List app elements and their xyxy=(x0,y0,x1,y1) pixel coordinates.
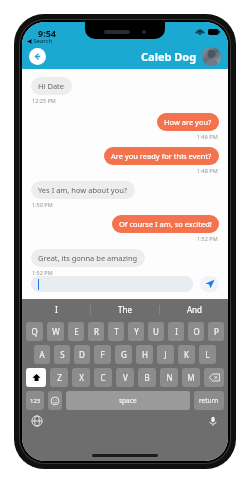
button[interactable]: Hi Date xyxy=(31,77,72,95)
button[interactable]: W xyxy=(47,322,64,341)
staticText: V xyxy=(123,372,128,383)
staticText: 12:25 PM xyxy=(32,97,56,104)
staticText: D xyxy=(79,349,85,360)
staticText: ◀ Search xyxy=(27,37,53,45)
button[interactable]: A xyxy=(34,345,50,364)
button[interactable]: C xyxy=(94,368,112,387)
button[interactable]: U xyxy=(148,322,164,341)
staticText: H xyxy=(142,349,148,360)
staticText: Z xyxy=(57,372,62,383)
button[interactable]: L xyxy=(199,345,216,364)
staticText: X xyxy=(79,372,84,383)
staticText: P xyxy=(214,326,219,337)
button[interactable]: Shift xyxy=(26,368,46,387)
button[interactable]: Emoji xyxy=(48,391,62,410)
staticText: K xyxy=(184,349,189,360)
staticText: I xyxy=(55,304,58,315)
button[interactable]: return xyxy=(194,391,224,410)
button[interactable]: P xyxy=(208,322,224,341)
staticText: J xyxy=(164,349,167,360)
staticText: Great, its gonna be amazing xyxy=(38,253,138,263)
staticText: 1:52 PM xyxy=(197,235,218,242)
button[interactable]: I xyxy=(168,322,184,341)
button[interactable]: Are you ready for this event? xyxy=(104,147,219,165)
staticText: Hi Date xyxy=(38,81,65,91)
button[interactable]: Change keyboard xyxy=(31,415,43,427)
staticText: Are you ready for this event? xyxy=(111,151,212,161)
button[interactable]: D xyxy=(74,345,90,364)
button[interactable]: Back xyxy=(29,48,46,65)
button[interactable]: K xyxy=(178,345,195,364)
staticText: Caleb Dog xyxy=(141,49,197,64)
button[interactable]: G xyxy=(115,345,132,364)
staticText: B xyxy=(144,372,150,383)
button[interactable]: J xyxy=(157,345,174,364)
button[interactable]: X xyxy=(72,368,90,387)
staticText: 9:54 xyxy=(38,27,56,39)
staticText: And xyxy=(187,304,202,315)
staticText: R xyxy=(94,326,99,337)
button[interactable]: T xyxy=(108,322,124,341)
button[interactable]: Of course I am, so excited! xyxy=(112,215,219,233)
staticText: 1:46 PM xyxy=(197,133,218,140)
staticText: 123 xyxy=(30,397,41,405)
button[interactable]: space xyxy=(66,391,190,410)
staticText: E xyxy=(74,326,79,337)
button[interactable]: Profile photo xyxy=(202,47,221,66)
button[interactable]: R xyxy=(88,322,104,341)
staticText: U xyxy=(153,326,159,337)
staticText: Q xyxy=(31,326,38,337)
staticText: G xyxy=(121,349,127,360)
staticText: 1:48 PM xyxy=(197,167,218,174)
button[interactable]: Y xyxy=(128,322,144,341)
staticText: I xyxy=(175,326,178,337)
button[interactable]: M xyxy=(182,368,200,387)
button[interactable] xyxy=(31,276,193,292)
button[interactable]: S xyxy=(54,345,70,364)
staticText: How are you? xyxy=(164,117,212,127)
staticText: 1:50 PM xyxy=(32,201,53,208)
button[interactable]: Send xyxy=(200,276,219,292)
button[interactable]: E xyxy=(68,322,84,341)
button[interactable]: Dictate xyxy=(207,415,219,427)
button[interactable]: N xyxy=(160,368,178,387)
staticText: Yes I am, how about you? xyxy=(38,185,128,195)
button[interactable]: H xyxy=(136,345,153,364)
staticText: Y xyxy=(134,326,139,337)
staticText: L xyxy=(205,349,210,360)
button[interactable]: F xyxy=(94,345,111,364)
staticText: N xyxy=(166,372,173,383)
staticText: Of course I am, so excited! xyxy=(119,219,212,229)
button[interactable]: B xyxy=(138,368,156,387)
button[interactable]: Z xyxy=(50,368,68,387)
staticText: A xyxy=(39,349,45,360)
staticText: M xyxy=(187,372,195,383)
button[interactable]: Yes I am, how about you? xyxy=(31,181,135,199)
staticText: space xyxy=(119,396,137,405)
staticText: S xyxy=(60,349,65,360)
button[interactable]: How are you? xyxy=(157,113,219,131)
button[interactable]: O xyxy=(188,322,204,341)
button[interactable]: Backspace xyxy=(204,368,224,387)
staticText: The xyxy=(118,304,132,315)
staticText: W xyxy=(52,326,60,337)
staticText: 1:52 PM xyxy=(32,269,53,276)
staticText: return xyxy=(199,396,219,405)
staticText: F xyxy=(100,349,105,360)
button[interactable]: The xyxy=(91,299,159,320)
button[interactable]: 123 xyxy=(26,391,44,410)
button[interactable]: Q xyxy=(26,322,43,341)
staticText: T xyxy=(114,326,119,337)
button[interactable]: V xyxy=(116,368,134,387)
staticText: O xyxy=(193,326,200,337)
button[interactable]: I xyxy=(22,299,90,320)
button[interactable]: And xyxy=(160,299,228,320)
button[interactable]: Great, its gonna be amazing xyxy=(31,249,145,267)
staticText: C xyxy=(100,372,106,383)
